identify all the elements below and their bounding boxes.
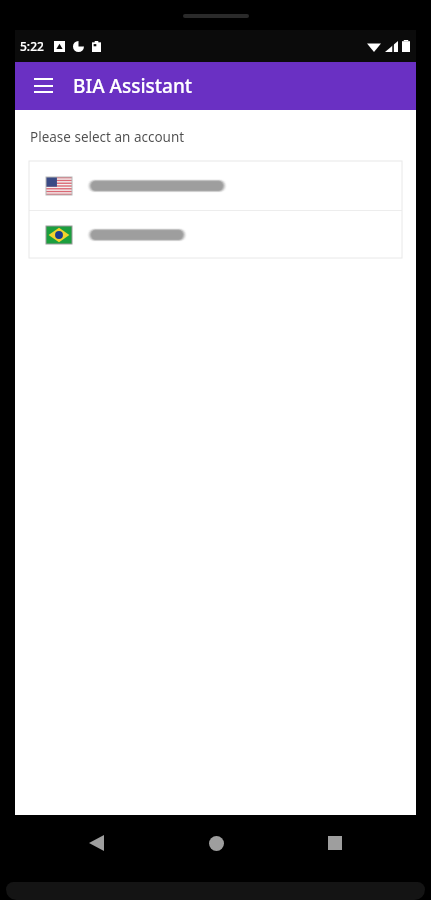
button[interactable] [29,162,402,210]
button[interactable]: Recent apps [311,819,359,867]
button[interactable] [29,211,402,259]
staticText: 5:22 [20,38,44,54]
staticText: Please select an account [30,128,185,146]
staticText: BIA Assistant [73,73,193,99]
button[interactable]: Open navigation menu [21,64,65,108]
button[interactable]: Back [72,819,120,867]
button[interactable]: Home [192,819,240,867]
